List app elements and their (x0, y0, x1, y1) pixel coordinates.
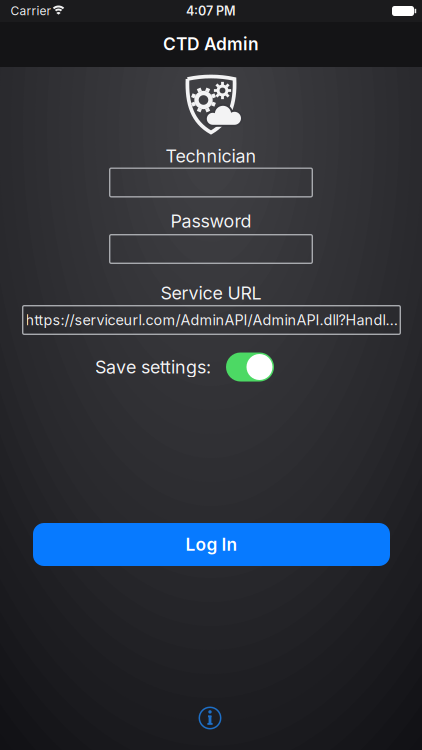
staticText: Log In (185, 534, 237, 555)
button[interactable]: Info (198, 706, 222, 730)
staticText: 4:07 PM (186, 3, 236, 19)
button[interactable]: Save settings (226, 352, 274, 381)
staticText: CTD Admin (163, 34, 259, 54)
staticText: Save settings: (95, 356, 211, 378)
button[interactable]: Technician (109, 167, 313, 197)
staticText: Carrier (10, 4, 51, 18)
staticText: Service URL (160, 282, 261, 304)
button[interactable]: Log In (33, 523, 390, 566)
staticText: Technician (165, 145, 256, 167)
staticText: Password (170, 210, 251, 232)
button[interactable]: Password (109, 234, 313, 264)
staticText: https://serviceurl.com/AdminAPI/AdminAPI… (25, 311, 397, 329)
button[interactable]: Service URL (22, 305, 401, 335)
